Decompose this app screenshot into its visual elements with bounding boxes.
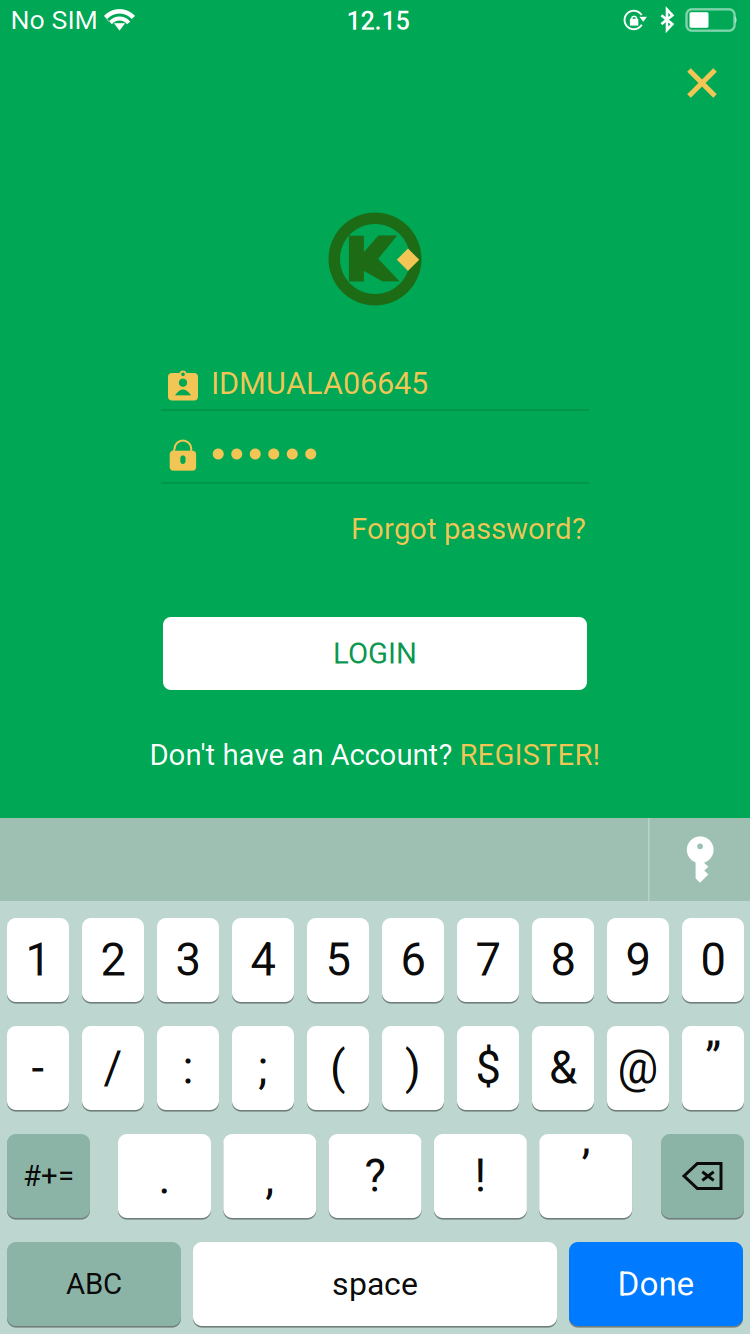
staticText: space xyxy=(332,1265,418,1303)
button[interactable]: space xyxy=(193,1242,557,1326)
button[interactable]: #+= xyxy=(7,1134,90,1218)
button[interactable]: ’ xyxy=(539,1134,632,1218)
staticText: ? xyxy=(365,1149,386,1202)
button[interactable]: - xyxy=(7,1026,69,1110)
button[interactable]: ? xyxy=(329,1134,422,1218)
button[interactable]: . xyxy=(118,1134,211,1218)
staticText: 1 xyxy=(25,933,50,986)
button[interactable]: LOGIN xyxy=(163,617,587,690)
button[interactable]: @ xyxy=(607,1026,669,1110)
staticText: ; xyxy=(258,1041,268,1094)
staticText: ’ xyxy=(581,1141,590,1194)
staticText: 12.15 xyxy=(346,6,409,36)
staticText: REGISTER! xyxy=(459,738,600,772)
staticText: 6 xyxy=(400,933,425,986)
button[interactable]: 2 xyxy=(82,918,144,1002)
button[interactable]: 7 xyxy=(457,918,519,1002)
staticText: $ xyxy=(475,1041,500,1094)
staticText: ) xyxy=(405,1041,421,1094)
staticText: 9 xyxy=(625,933,650,986)
staticText: 8 xyxy=(550,933,575,986)
button[interactable]: 9 xyxy=(607,918,669,1002)
button[interactable]: 1 xyxy=(7,918,69,1002)
staticText: 2 xyxy=(100,933,125,986)
staticText: . xyxy=(158,1151,170,1204)
button[interactable]: 6 xyxy=(382,918,444,1002)
staticText: 3 xyxy=(175,933,200,986)
button[interactable]: & xyxy=(532,1026,594,1110)
staticText: @ xyxy=(617,1041,658,1094)
button[interactable]: Done xyxy=(569,1242,743,1326)
staticText: ! xyxy=(474,1149,486,1202)
staticText: , xyxy=(265,1151,274,1204)
staticText: & xyxy=(549,1041,577,1094)
button[interactable]: 4 xyxy=(232,918,294,1002)
staticText: #+= xyxy=(23,1159,74,1193)
staticText: No SIM xyxy=(10,4,97,36)
staticText: Forgot password? xyxy=(351,512,586,546)
staticText: : xyxy=(182,1041,193,1094)
staticText: 4 xyxy=(250,933,275,986)
staticText: - xyxy=(31,1041,44,1094)
button[interactable]: Close xyxy=(673,54,730,111)
button[interactable]: : xyxy=(157,1026,219,1110)
button[interactable]: Delete xyxy=(661,1134,744,1218)
button[interactable]: , xyxy=(223,1134,316,1218)
button[interactable]: REGISTER! xyxy=(459,738,600,772)
staticText: ” xyxy=(705,1033,721,1086)
button[interactable]: 3 xyxy=(157,918,219,1002)
button[interactable]: $ xyxy=(457,1026,519,1110)
button[interactable]: ABC xyxy=(7,1242,181,1326)
button[interactable]: 8 xyxy=(532,918,594,1002)
staticText: / xyxy=(103,1041,122,1094)
button[interactable]: Passwords xyxy=(650,818,750,901)
button[interactable]: ” xyxy=(682,1026,744,1110)
button[interactable]: Forgot password? xyxy=(339,504,598,554)
button[interactable]: ( xyxy=(307,1026,369,1110)
staticText: 0 xyxy=(700,933,725,986)
button[interactable]: ) xyxy=(382,1026,444,1110)
staticText: LOGIN xyxy=(333,636,417,671)
button[interactable]: 5 xyxy=(307,918,369,1002)
staticText: IDMUALA06645 xyxy=(211,365,428,401)
button[interactable]: 0 xyxy=(682,918,744,1002)
button[interactable]: / xyxy=(82,1026,144,1110)
staticText: 7 xyxy=(475,933,500,986)
staticText: ( xyxy=(330,1041,346,1094)
button[interactable]: ! xyxy=(434,1134,527,1218)
staticText: ABC xyxy=(66,1267,122,1301)
staticText: 5 xyxy=(325,933,350,986)
staticText: Done xyxy=(617,1264,694,1304)
staticText: Don't have an Account? xyxy=(149,738,459,772)
button[interactable]: ; xyxy=(232,1026,294,1110)
